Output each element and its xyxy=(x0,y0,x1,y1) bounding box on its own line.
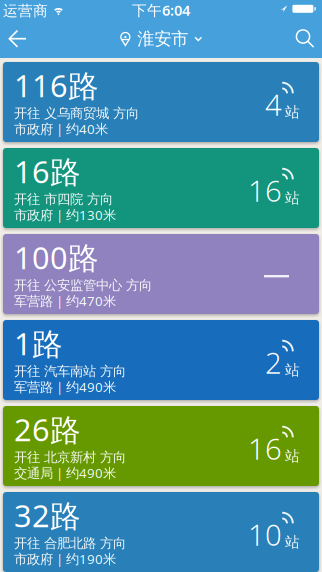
staticText: 开往 汽车南站 方向 xyxy=(14,363,126,379)
staticText: 2 xyxy=(265,343,282,382)
button[interactable]: 1路 xyxy=(3,320,319,400)
staticText: 26路 xyxy=(14,409,81,450)
staticText: 站 xyxy=(285,361,300,379)
staticText: 交通局 | 约490米 xyxy=(14,464,116,482)
button[interactable]: 100路 xyxy=(3,234,319,314)
staticText: 市政府 | 约130米 xyxy=(14,206,116,224)
staticText: 站 xyxy=(285,447,300,465)
staticText: 淮安市 xyxy=(137,28,188,50)
staticText: 市政府 | 约190米 xyxy=(14,550,116,568)
staticText: 运营商 xyxy=(3,2,48,20)
staticText: 开往 合肥北路 方向 xyxy=(14,535,126,551)
staticText: 站 xyxy=(285,533,300,551)
staticText: 开往 市四院 方向 xyxy=(14,191,113,207)
staticText: 10 xyxy=(248,515,282,554)
staticText: 市政府 | 约40米 xyxy=(14,120,108,138)
staticText: 站 xyxy=(285,103,300,121)
button[interactable]: Back xyxy=(0,20,41,58)
staticText: 32路 xyxy=(14,495,81,536)
staticText: 站 xyxy=(285,189,300,207)
staticText: 16 xyxy=(248,429,282,468)
staticText: 16 xyxy=(248,171,282,210)
staticText: 116路 xyxy=(14,65,99,106)
button[interactable]: 选择城市 xyxy=(120,20,202,58)
staticText: 16路 xyxy=(14,151,81,192)
staticText: 4 xyxy=(265,85,282,124)
staticText: 100路 xyxy=(14,237,99,278)
button[interactable]: 16路 xyxy=(3,148,319,228)
button[interactable]: 32路 xyxy=(3,492,319,572)
button[interactable]: Search xyxy=(284,20,322,58)
staticText: 下午6:04 xyxy=(132,0,190,20)
staticText: 1路 xyxy=(14,323,63,364)
staticText: 军营路 | 约470米 xyxy=(14,292,116,310)
button[interactable]: 26路 xyxy=(3,406,319,486)
staticText: 开往 义乌商贸城 方向 xyxy=(14,105,139,121)
button[interactable]: 116路 xyxy=(3,62,319,142)
staticText: 开往 北京新村 方向 xyxy=(14,449,126,465)
staticText: 开往 公安监管中心 方向 xyxy=(14,277,152,293)
staticText: 军营路 | 约490米 xyxy=(14,378,116,396)
